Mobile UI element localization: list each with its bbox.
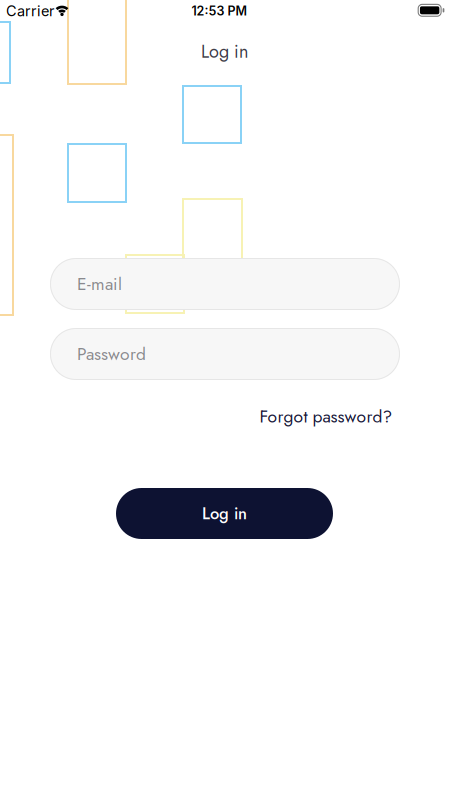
button[interactable]: E-mail	[50, 258, 400, 310]
button[interactable]: Password	[50, 328, 400, 380]
staticText: Password	[77, 341, 146, 366]
staticText: E-mail	[77, 271, 122, 296]
staticText: Log in	[201, 38, 248, 64]
button[interactable]: Forgot password?	[259, 404, 392, 429]
staticText: Log in	[202, 502, 247, 525]
staticText: Carrier	[6, 2, 54, 20]
button[interactable]: Log in	[116, 488, 333, 539]
staticText: Forgot password?	[259, 404, 392, 429]
staticText: 12:53 PM	[191, 3, 247, 18]
